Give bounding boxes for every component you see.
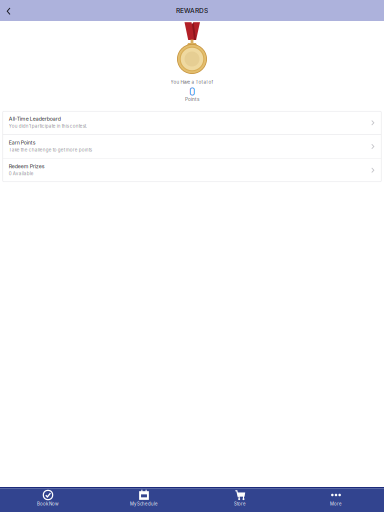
staticText: My Schedule: [130, 501, 158, 506]
button[interactable]: All-Time Leaderboard: [3, 111, 381, 134]
staticText: Points: [185, 96, 199, 102]
staticText: Earn Points: [9, 139, 36, 146]
button[interactable]: Redeem Prizes: [3, 159, 381, 182]
staticText: 0: [189, 84, 195, 98]
button[interactable]: More: [288, 488, 384, 512]
staticText: Take the challenge to get more points: [9, 147, 92, 153]
staticText: You didn't participate in this contest.: [9, 123, 87, 129]
staticText: All-Time Leaderboard: [9, 116, 61, 122]
staticText: Store: [234, 501, 246, 506]
staticText: 0 Available: [9, 171, 34, 176]
staticText: Redeem Prizes: [9, 163, 45, 169]
staticText: REWARDS: [176, 6, 208, 14]
button[interactable]: Book Now: [0, 488, 96, 512]
button[interactable]: Back: [0, 0, 16, 21]
staticText: You Have a Total of: [170, 79, 213, 85]
button[interactable]: My Schedule: [96, 488, 192, 512]
button[interactable]: Earn Points: [3, 135, 381, 158]
staticText: Book Now: [37, 501, 59, 506]
staticText: More: [330, 501, 342, 506]
button[interactable]: Store: [192, 488, 288, 512]
